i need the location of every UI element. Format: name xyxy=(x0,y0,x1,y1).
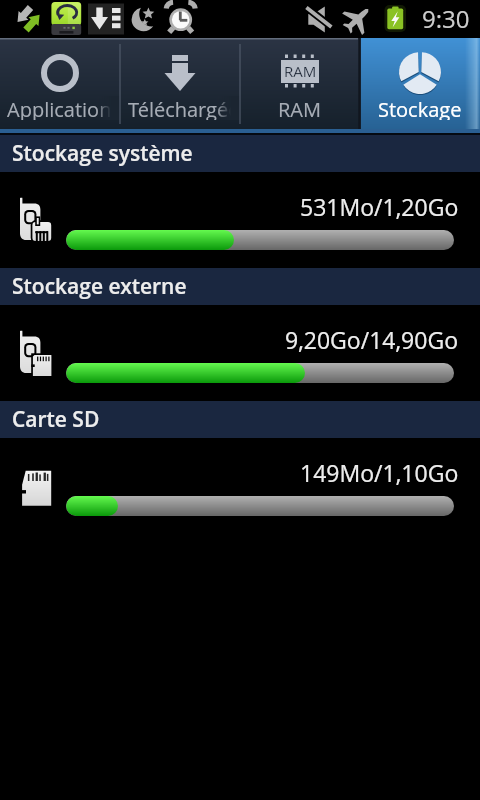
button[interactable]: Stockage xyxy=(360,38,480,129)
staticText: 9:30 xyxy=(422,2,470,35)
button[interactable]: 149Mo/1,10Go xyxy=(0,438,480,534)
button[interactable]: Applications xyxy=(0,38,120,129)
staticText: 9,20Go/14,90Go xyxy=(285,324,459,355)
staticText: RAM xyxy=(278,96,322,120)
staticText: Téléchargées xyxy=(128,96,240,120)
button[interactable]: Téléchargées xyxy=(120,38,240,129)
staticText: 531Mo/1,20Go xyxy=(300,191,459,222)
staticText: Stockage système xyxy=(12,139,193,168)
button[interactable]: 531Mo/1,20Go xyxy=(0,172,480,268)
staticText: Stockage xyxy=(378,96,462,120)
staticText: Stockage externe xyxy=(12,272,187,301)
button[interactable]: 9,20Go/14,90Go xyxy=(0,305,480,401)
staticText: RAM xyxy=(284,61,317,81)
staticText: Applications xyxy=(7,96,120,120)
staticText: Carte SD xyxy=(12,405,100,434)
staticText: 149Mo/1,10Go xyxy=(300,457,459,488)
button[interactable]: RAM xyxy=(240,38,360,129)
